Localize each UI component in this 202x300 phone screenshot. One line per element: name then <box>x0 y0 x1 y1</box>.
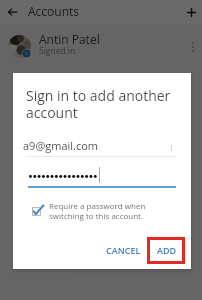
button[interactable]: Antin Patel <box>0 24 202 68</box>
button[interactable]: Require a password when switching to thi… <box>27 201 179 227</box>
staticText: Accounts <box>28 3 80 19</box>
button[interactable]: More options <box>186 36 200 58</box>
staticText: Antin Patel <box>39 31 100 47</box>
staticText: ADD <box>157 244 177 256</box>
staticText: a9@gmail.com <box>23 138 99 153</box>
button[interactable]: Add account <box>180 0 202 24</box>
button[interactable]: Back <box>0 0 24 24</box>
staticText: Require a password when switching to thi… <box>49 200 146 221</box>
staticText: Signed in <box>39 45 76 57</box>
staticText: Sign in to add another account <box>26 86 171 122</box>
staticText: CANCEL <box>106 244 141 256</box>
button[interactable]: CANCEL <box>103 240 143 260</box>
button[interactable]: ADD <box>148 236 186 263</box>
